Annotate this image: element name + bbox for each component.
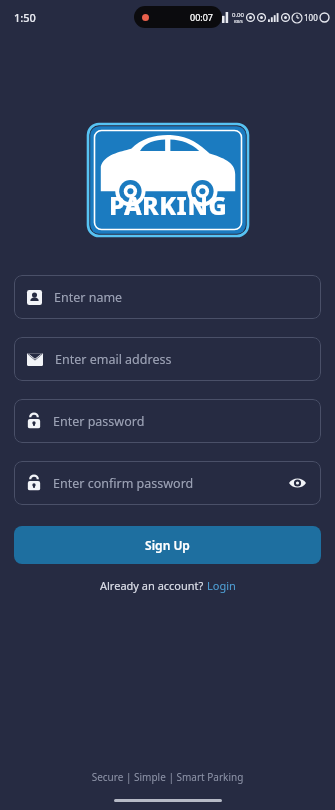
staticText: PARKING	[109, 188, 228, 222]
staticText: Enter password	[53, 413, 145, 430]
staticText: Enter confirm password	[53, 475, 194, 492]
button[interactable]: Enter password	[14, 399, 321, 443]
staticText: 00:07	[190, 11, 214, 23]
staticText: 1:50	[14, 10, 36, 25]
button[interactable]: Enter confirm password	[14, 461, 321, 505]
button[interactable]: Login	[207, 578, 236, 593]
button[interactable]: Enter name	[14, 275, 321, 319]
staticText: KB/S	[234, 19, 243, 24]
staticText: Sign Up	[145, 537, 190, 553]
button[interactable]: Sign Up	[14, 526, 321, 564]
button[interactable]: Enter email address	[14, 337, 321, 381]
staticText: Already an account?	[100, 578, 207, 593]
staticText: Secure | Simple | Smart Parking	[0, 770, 335, 784]
staticText: Enter email address	[55, 351, 172, 368]
staticText: 0.00	[232, 11, 244, 19]
staticText: Login	[207, 578, 236, 593]
staticText: 100	[304, 12, 318, 23]
button[interactable]: Show password	[286, 472, 308, 494]
staticText: Enter name	[54, 289, 123, 306]
